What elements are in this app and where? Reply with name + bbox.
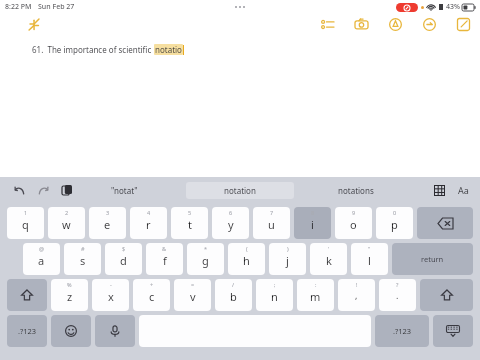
staticText: z: [67, 289, 73, 304]
button[interactable]: 9: [335, 207, 372, 239]
staticText: -: [110, 281, 112, 288]
staticText: d: [120, 253, 127, 268]
button[interactable]: notation: [186, 182, 294, 199]
staticText: #: [81, 245, 85, 252]
button[interactable]: return: [392, 243, 473, 275]
staticText: .: [396, 289, 399, 301]
button[interactable]: ?: [379, 279, 416, 311]
staticText: o: [350, 217, 357, 232]
button[interactable]: Camera: [352, 15, 370, 33]
staticText: *: [204, 245, 208, 252]
button[interactable]: Redo: [34, 181, 52, 199]
staticText: 1: [24, 209, 28, 216]
staticText: .?123: [18, 326, 37, 336]
button[interactable]: Checklist: [318, 15, 336, 33]
button[interactable]: Hide keyboard: [433, 315, 473, 347]
staticText: 9: [352, 209, 356, 216]
staticText: .?123: [393, 326, 412, 336]
staticText: notation: [224, 185, 256, 196]
staticText: r: [146, 217, 151, 232]
staticText: !: [356, 281, 358, 288]
button[interactable]: #: [64, 243, 101, 275]
staticText: (: [246, 245, 248, 252]
staticText: /: [232, 281, 235, 288]
staticText: Aa: [458, 184, 469, 196]
button[interactable]: Table: [430, 181, 448, 199]
staticText: ": [368, 245, 371, 252]
button[interactable]: 2: [48, 207, 85, 239]
button[interactable]: .?123: [375, 315, 429, 347]
button[interactable]: Paste: [58, 181, 76, 199]
staticText: &: [162, 245, 167, 252]
button[interactable]: Emoji: [51, 315, 91, 347]
staticText: s: [80, 253, 86, 268]
button[interactable]: %: [51, 279, 88, 311]
staticText: 0: [393, 209, 397, 216]
button[interactable]: /: [215, 279, 252, 311]
staticText: +: [150, 281, 154, 288]
staticText: 61. The importance of scientific: [32, 44, 154, 55]
staticText: p: [391, 217, 398, 232]
button[interactable]: 1: [7, 207, 44, 239]
button[interactable]: Collapse: [24, 15, 42, 33]
button[interactable]: .?123: [7, 315, 47, 347]
button[interactable]: $: [105, 243, 142, 275]
staticText: ': [328, 245, 330, 252]
staticText: m: [310, 289, 321, 304]
button[interactable]: Undo: [10, 181, 28, 199]
button[interactable]: ': [310, 243, 347, 275]
staticText: @: [39, 245, 44, 252]
button[interactable]: +: [133, 279, 170, 311]
button[interactable]: Format: [454, 181, 472, 199]
button[interactable]: Backspace: [417, 207, 473, 239]
staticText: y: [228, 217, 234, 232]
staticText: return: [421, 254, 444, 264]
staticText: 8:22 PM: [5, 2, 32, 12]
button[interactable]: "notat": [62, 182, 186, 199]
staticText: j: [286, 253, 289, 268]
button[interactable]: Share: [420, 15, 438, 33]
button[interactable]: ;: [256, 279, 293, 311]
button[interactable]: 8: [294, 207, 331, 239]
button[interactable]: Dictation: [95, 315, 135, 347]
button[interactable]: (: [228, 243, 265, 275]
staticText: c: [149, 289, 155, 304]
button[interactable]: 4: [130, 207, 167, 239]
staticText: %: [67, 281, 72, 288]
staticText: :: [315, 281, 317, 288]
staticText: n: [271, 289, 278, 304]
button[interactable]: 0: [376, 207, 413, 239]
button[interactable]: !: [338, 279, 375, 311]
staticText: ?: [396, 281, 399, 288]
staticText: h: [243, 253, 250, 268]
button[interactable]: Markup: [386, 15, 404, 33]
staticText: b: [230, 289, 237, 304]
staticText: k: [326, 253, 332, 268]
button[interactable]: 5: [171, 207, 208, 239]
staticText: 43%: [446, 2, 460, 12]
button[interactable]: Compose: [454, 15, 472, 33]
button[interactable]: ": [351, 243, 388, 275]
button[interactable]: @: [23, 243, 60, 275]
staticText: e: [104, 217, 111, 232]
staticText: 3: [106, 209, 110, 216]
staticText: v: [190, 289, 196, 304]
button[interactable]: 3: [89, 207, 126, 239]
staticText: 4: [147, 209, 151, 216]
staticText: Sun Feb 27: [38, 2, 75, 12]
button[interactable]: Shift: [420, 279, 473, 311]
staticText: 7: [270, 209, 274, 216]
button[interactable]: 6: [212, 207, 249, 239]
button[interactable]: ): [269, 243, 306, 275]
button[interactable]: notations: [294, 182, 418, 199]
button[interactable]: &: [146, 243, 183, 275]
button[interactable]: :: [297, 279, 334, 311]
button[interactable]: 7: [253, 207, 290, 239]
button[interactable]: *: [187, 243, 224, 275]
button[interactable]: =: [174, 279, 211, 311]
staticText: g: [202, 253, 209, 268]
button[interactable]: -: [92, 279, 129, 311]
button[interactable]: Shift: [7, 279, 47, 311]
